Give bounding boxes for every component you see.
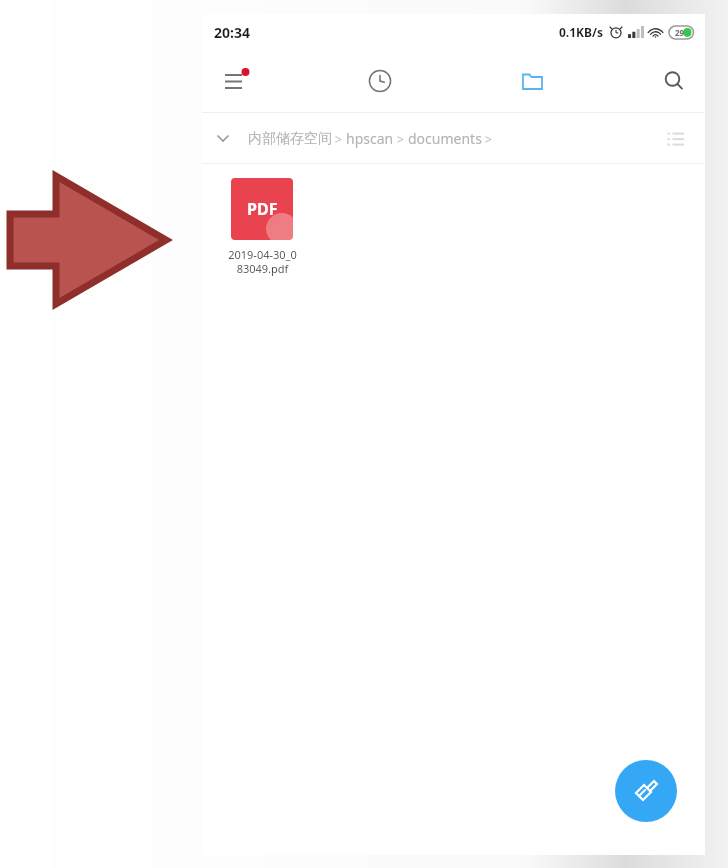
button[interactable]: Expand xyxy=(202,117,244,159)
button[interactable]: Files xyxy=(508,57,556,105)
button[interactable]: Menu xyxy=(212,57,260,105)
button[interactable]: View mode xyxy=(654,116,698,160)
staticText: 2019-04-30_0 83049.pdf xyxy=(228,247,297,276)
staticText: 内部储存空间 xyxy=(248,130,332,148)
button[interactable]: PDF xyxy=(214,178,310,276)
staticText: hpscan xyxy=(346,129,394,148)
staticText: PDF xyxy=(247,198,278,220)
staticText: > xyxy=(394,131,408,147)
staticText: documents xyxy=(408,129,482,148)
staticText: 0.1KB/s xyxy=(559,24,604,40)
staticText: 29 xyxy=(675,27,685,38)
button[interactable]: Search xyxy=(650,57,698,105)
staticText: > xyxy=(482,131,496,147)
button[interactable]: Recent xyxy=(356,57,404,105)
button[interactable]: Clean xyxy=(615,760,677,822)
staticText: > xyxy=(332,131,346,147)
button[interactable]: 内部储存空间 xyxy=(248,129,496,148)
staticText: 20:34 xyxy=(214,23,250,42)
